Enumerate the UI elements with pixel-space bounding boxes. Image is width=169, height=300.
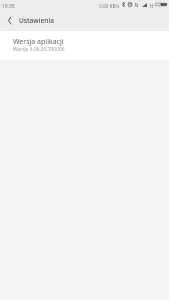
staticText: Wersja aplikacji	[13, 37, 64, 47]
button[interactable]: Back	[1, 12, 18, 30]
staticText: 19:35	[2, 3, 15, 10]
button[interactable]: Wersja aplikacji	[0, 31, 169, 60]
staticText: H	[150, 3, 154, 9]
staticText: Ustawienia	[19, 16, 54, 25]
staticText: 0.00 KB/s	[99, 3, 120, 9]
staticText: Wersja 6.06.05.700006	[13, 46, 65, 53]
